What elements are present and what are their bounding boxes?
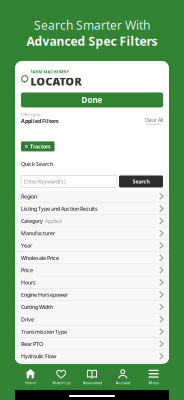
staticText: Applied Filters (21, 117, 59, 124)
staticText: Applied (43, 217, 62, 224)
staticText: Price (21, 267, 33, 274)
staticText: Done (81, 95, 102, 105)
button[interactable]: Home (15, 364, 46, 389)
staticText: Tractors (30, 143, 51, 150)
staticText: Clear All (145, 116, 163, 124)
staticText: LOCATOR (31, 74, 82, 88)
button[interactable]: Search (119, 175, 163, 187)
staticText: Account (116, 380, 130, 385)
staticText: Home (25, 380, 36, 385)
staticText: Search Smarter With (34, 17, 150, 33)
button[interactable]: Done (21, 92, 163, 107)
button[interactable]: Manufacturer (15, 227, 169, 240)
button[interactable]: Watch List (46, 364, 77, 389)
staticText: Filtering by: (21, 111, 41, 117)
staticText: Search (132, 178, 149, 185)
button[interactable]: Menu (138, 364, 169, 389)
staticText: Cutting Width (21, 303, 53, 311)
button[interactable]: Category (15, 215, 169, 227)
staticText: Menu (149, 380, 159, 385)
staticText: Transmission Type (21, 328, 67, 335)
button[interactable]: Drive (15, 313, 169, 326)
staticText: Watch List (52, 380, 70, 385)
button[interactable]: Clear All (145, 116, 163, 124)
button[interactable]: Engine Horsepower (15, 289, 169, 301)
button[interactable]: Listing Type and Auction Results (15, 203, 169, 215)
button[interactable]: Transmission Type (15, 326, 169, 338)
staticText: Advanced Spec Filters (26, 33, 157, 49)
staticText: Drive (21, 316, 34, 323)
staticText: Listing Type and Auction Results (21, 205, 98, 212)
button[interactable]: Price (15, 264, 169, 277)
staticText: × (24, 142, 28, 151)
button[interactable]: × (21, 141, 55, 151)
staticText: Wholesale Price (21, 254, 59, 261)
staticText: Year (21, 242, 32, 249)
button[interactable]: Cutting Width (15, 301, 169, 313)
button[interactable]: Region (15, 190, 169, 203)
staticText: Hydraulic Flow (21, 353, 56, 360)
button[interactable]: Account (107, 364, 138, 389)
staticText: Hours (21, 279, 36, 286)
staticText: Engine Horsepower (21, 291, 68, 298)
staticText: Rear PTO (21, 340, 43, 347)
staticText: Category (21, 217, 43, 224)
staticText: Region (21, 193, 37, 200)
staticText: FARM MACHINERY (31, 69, 70, 74)
staticText: Manufacturer (21, 230, 55, 237)
staticText: Newsstand (82, 380, 101, 385)
button[interactable]: Hours (15, 277, 169, 289)
button[interactable]: Newsstand (77, 364, 107, 389)
button[interactable]: Year (15, 240, 169, 252)
button[interactable]: Rear PTO (15, 338, 169, 350)
button[interactable]: Hydraulic Flow (15, 350, 169, 363)
staticText: Quick Search (21, 160, 53, 167)
button[interactable]: Wholesale Price (15, 252, 169, 264)
staticText: Enter Keyword(s) (24, 178, 66, 185)
